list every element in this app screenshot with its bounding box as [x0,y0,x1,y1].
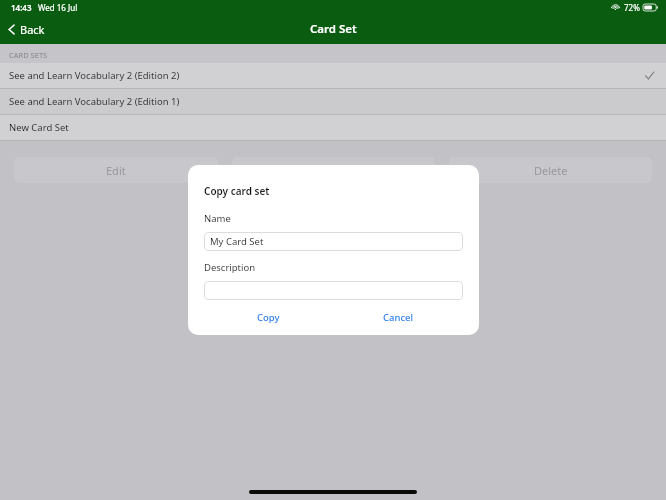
staticText: See and Learn Vocabulary 2 (Edition 2) [9,69,180,82]
staticText: New Card Set [9,121,69,134]
button[interactable] [204,281,463,300]
staticText: Copy card set [204,184,270,198]
staticText: 14:43 [11,2,32,13]
staticText: See and Learn Vocabulary 2 (Edition 1) [9,95,180,108]
staticText: Delete [534,163,568,178]
staticText: Edit [106,163,126,178]
staticText: 72% [624,2,640,13]
button[interactable]: Back [0,18,55,41]
staticText: Wed 16 Jul [38,2,78,13]
button[interactable]: Edit [14,157,218,183]
staticText: Copy [321,163,347,178]
staticText: Copy [257,311,280,324]
staticText: Name [204,212,231,225]
staticText: Cancel [383,311,414,324]
staticText: Description [204,261,256,274]
button[interactable]: New Card Set [0,115,666,140]
button[interactable]: Copy [232,157,435,183]
button[interactable]: Cancel [333,311,463,324]
button[interactable]: See and Learn Vocabulary 2 (Edition 2) [0,63,666,88]
staticText: Card Set [310,21,357,37]
button[interactable]: My Card Set [204,232,463,251]
button[interactable]: Copy [204,311,333,324]
staticText: CARD SETS [9,50,48,60]
button[interactable]: Delete [449,157,652,183]
staticText: My Card Set [210,235,264,248]
button[interactable]: See and Learn Vocabulary 2 (Edition 1) [0,89,666,114]
staticText: Back [20,22,45,37]
